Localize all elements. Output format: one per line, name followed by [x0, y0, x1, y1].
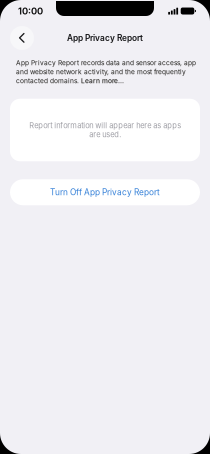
staticText: Turn Off App Privacy Report [50, 187, 160, 197]
staticText: App Privacy Report records data and sens… [16, 59, 196, 85]
button[interactable]: Turn Off App Privacy Report [10, 179, 200, 205]
button[interactable]: Back [10, 26, 34, 50]
staticText: 10:00 [18, 5, 43, 17]
staticText: App Privacy Report [67, 33, 143, 43]
staticText: Report information will appear here as a… [29, 121, 181, 139]
